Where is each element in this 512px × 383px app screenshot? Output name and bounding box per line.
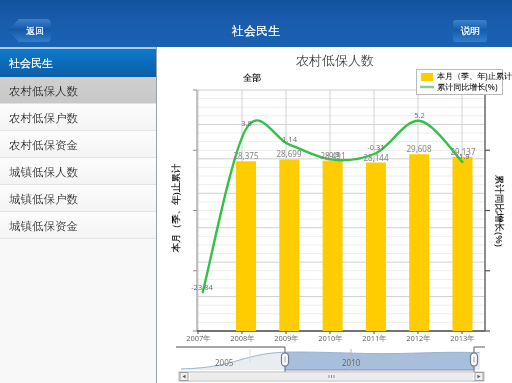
staticText: -0.9 <box>326 149 340 159</box>
staticText: 本月（季、年)止累计 <box>437 70 512 81</box>
button[interactable]: 社会民生 <box>0 49 157 77</box>
staticText: -0.31 <box>367 142 385 152</box>
staticText: 28,375 <box>233 150 259 161</box>
button[interactable]: 农村低保人数 <box>0 77 157 104</box>
staticText: 返回 <box>26 25 44 36</box>
button[interactable]: 返回 <box>8 19 51 42</box>
staticText: 累计同比增长(%) <box>437 81 498 92</box>
staticText: 28,699 <box>276 148 302 159</box>
button[interactable]: 城镇低保资金 <box>0 212 157 239</box>
staticText: 2009年 <box>274 333 299 343</box>
staticText: 社会民生 <box>232 23 280 38</box>
staticText: 本月（季、年)止累计 <box>168 163 181 252</box>
staticText: 2010 <box>342 357 361 368</box>
button[interactable]: 农村低保资金 <box>0 131 157 158</box>
staticText: -1.9 <box>456 151 470 161</box>
staticText: 全部 <box>243 72 261 83</box>
staticText: 农村低保资金 <box>9 138 78 152</box>
staticText: 2008年 <box>230 333 255 343</box>
staticText: 城镇低保人数 <box>9 165 78 179</box>
staticText: 5.2 <box>414 110 425 120</box>
staticText: 农村低保人数 <box>296 52 374 68</box>
button[interactable]: 农村低保户数 <box>0 104 157 131</box>
staticText: 社会民生 <box>9 56 53 70</box>
staticText: 28,491 <box>320 150 346 161</box>
staticText: 2007年 <box>186 333 211 343</box>
staticText: 29,608 <box>406 143 432 154</box>
staticText: 2011年 <box>362 333 387 343</box>
staticText: 2005 <box>215 357 234 368</box>
staticText: 3.8 <box>241 118 252 128</box>
staticText: 说明 <box>461 25 480 37</box>
staticText: 1.14 <box>282 134 297 144</box>
button[interactable]: 城镇低保户数 <box>0 185 157 212</box>
staticText: 农村低保人数 <box>9 84 78 98</box>
staticText: 2012年 <box>406 333 431 343</box>
staticText: 2010年 <box>318 333 343 343</box>
button[interactable]: 说明 <box>453 20 487 42</box>
button[interactable]: 城镇低保人数 <box>0 158 157 185</box>
staticText: 城镇低保资金 <box>9 219 78 233</box>
staticText: 农村低保户数 <box>9 111 78 125</box>
staticText: 28,144 <box>363 152 389 163</box>
staticText: 累计同比增长(%) <box>493 175 506 248</box>
staticText: -23.84 <box>191 282 213 292</box>
staticText: 29,137 <box>450 146 476 157</box>
staticText: 城镇低保户数 <box>9 192 78 206</box>
staticText: 2013年 <box>450 333 475 343</box>
